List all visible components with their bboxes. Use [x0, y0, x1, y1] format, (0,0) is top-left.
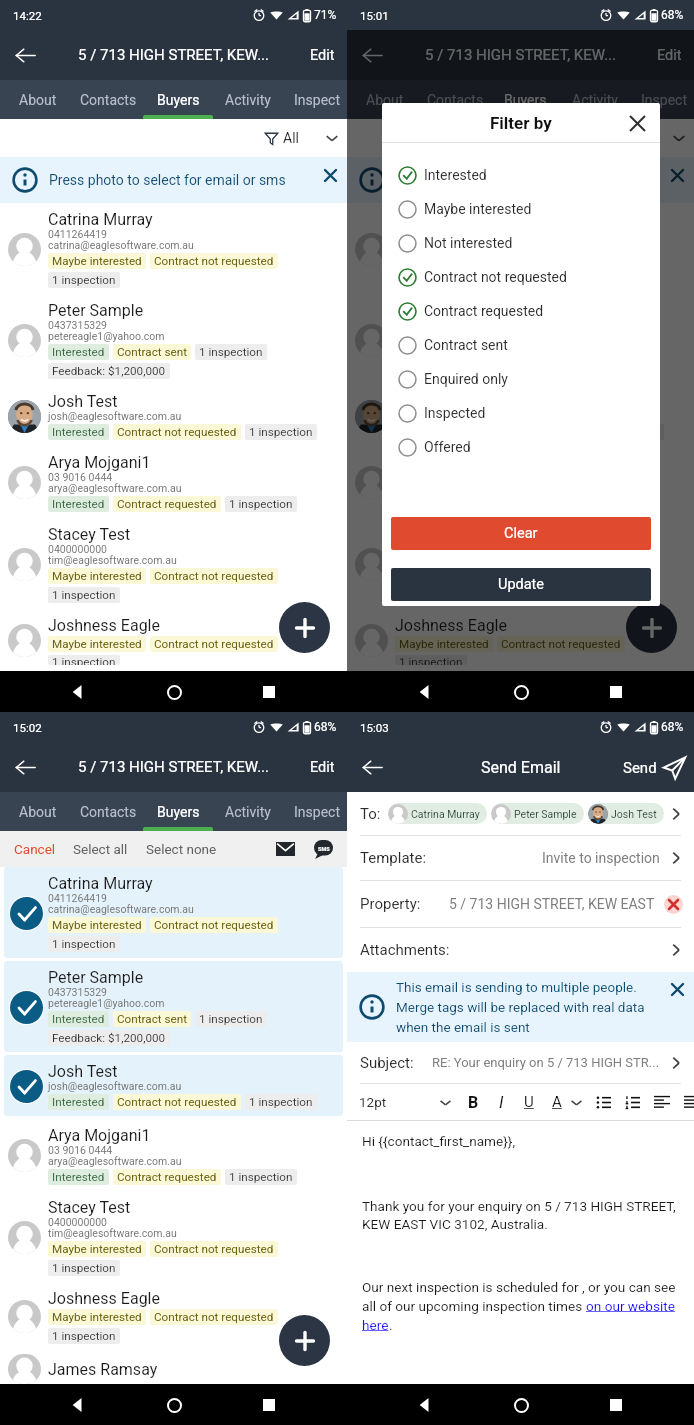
- button[interactable]: Inspect: [630, 80, 694, 119]
- button[interactable]: About: [350, 80, 420, 119]
- button[interactable]: To:: [347, 792, 694, 835]
- button[interactable]: Back: [8, 38, 42, 72]
- button[interactable]: Contacts: [73, 80, 143, 119]
- button[interactable]: Add: [626, 602, 677, 653]
- button[interactable]: Home: [503, 1387, 539, 1423]
- button[interactable]: Home: [156, 1387, 192, 1423]
- button[interactable]: Catrina Murray: [347, 203, 694, 294]
- button[interactable]: Close: [661, 972, 694, 1042]
- button[interactable]: Joshness Eagle: [0, 609, 347, 671]
- staticText: Interested: [52, 497, 105, 511]
- button[interactable]: Back: [60, 674, 96, 710]
- staticText: All: [630, 130, 646, 146]
- button[interactable]: Home: [503, 674, 539, 710]
- button[interactable]: Inspected: [382, 396, 660, 430]
- button[interactable]: Stacey Test: [347, 518, 694, 609]
- button[interactable]: Close: [314, 157, 347, 203]
- button[interactable]: Activity: [213, 792, 283, 831]
- button[interactable]: Close: [622, 108, 652, 138]
- button[interactable]: Peter Sample: [4, 961, 343, 1052]
- button[interactable]: Update: [391, 568, 651, 601]
- button[interactable]: Arya Mojgani1: [0, 1119, 347, 1191]
- button[interactable]: Recents: [251, 1387, 287, 1423]
- button[interactable]: Home: [156, 674, 192, 710]
- button[interactable]: Close: [661, 157, 694, 203]
- button[interactable]: Recents: [598, 1387, 634, 1423]
- button[interactable]: Inspect: [283, 80, 347, 119]
- button[interactable]: Property:: [347, 881, 694, 927]
- staticText: 0400000000: [395, 543, 455, 554]
- button[interactable]: Activity: [560, 80, 630, 119]
- button[interactable]: Edit: [310, 759, 335, 776]
- staticText: 1 inspection: [52, 1261, 116, 1275]
- staticText: Joshness Eagle: [48, 616, 160, 634]
- button[interactable]: About: [3, 80, 73, 119]
- button[interactable]: Inspect: [283, 792, 347, 831]
- button[interactable]: Arya Mojgani1: [0, 446, 347, 518]
- button[interactable]: Contract requested: [382, 294, 660, 328]
- button[interactable]: SMS: [308, 834, 338, 864]
- button[interactable]: Recents: [598, 674, 634, 710]
- button[interactable]: Catrina Murray: [4, 867, 343, 958]
- button[interactable]: Arya Mojgani1: [347, 446, 694, 518]
- button[interactable]: Maybe interested: [382, 192, 660, 226]
- button[interactable]: Clear: [391, 517, 651, 550]
- button[interactable]: Josh Test: [4, 1055, 343, 1116]
- button[interactable]: Contacts: [420, 80, 490, 119]
- button[interactable]: Contract not requested: [382, 260, 660, 294]
- button[interactable]: Interested: [382, 158, 660, 192]
- button[interactable]: Joshness Eagle: [347, 609, 694, 671]
- button[interactable]: Back: [407, 1387, 443, 1423]
- button[interactable]: Recents: [251, 674, 287, 710]
- button[interactable]: Send: [623, 756, 686, 779]
- button[interactable]: Not interested: [382, 226, 660, 260]
- staticText: Maybe interested: [52, 569, 142, 583]
- button[interactable]: Select all: [73, 841, 128, 857]
- button[interactable]: Select none: [146, 841, 217, 857]
- button[interactable]: Contract sent: [382, 328, 660, 362]
- button[interactable]: Back: [355, 750, 389, 784]
- button[interactable]: Buyers: [143, 792, 213, 831]
- button[interactable]: All: [264, 130, 339, 146]
- button[interactable]: Josh Test: [0, 385, 347, 446]
- button[interactable]: Peter Sample: [347, 294, 694, 385]
- staticText: Maybe interested: [52, 1310, 142, 1324]
- staticText: 03 9016 0444: [48, 471, 113, 482]
- button[interactable]: Subject:: [347, 1042, 694, 1083]
- button[interactable]: Add: [279, 1315, 330, 1366]
- staticText: Press photo to select for email or sms: [396, 172, 661, 188]
- staticText: Contract not requested: [501, 569, 621, 583]
- button[interactable]: Back: [60, 1387, 96, 1423]
- staticText: 1 inspection: [52, 273, 116, 287]
- button[interactable]: Activity: [213, 80, 283, 119]
- button[interactable]: Cancel: [14, 841, 56, 857]
- staticText: Activity: [572, 92, 618, 108]
- button[interactable]: Buyers: [490, 80, 560, 119]
- button[interactable]: Stacey Test: [0, 1191, 347, 1282]
- button[interactable]: Stacey Test: [0, 518, 347, 609]
- button[interactable]: Attachments:: [347, 928, 694, 972]
- button[interactable]: Back: [355, 38, 389, 72]
- button[interactable]: Catrina Murray: [0, 203, 347, 294]
- button[interactable]: All: [611, 130, 686, 146]
- button[interactable]: Offered: [382, 430, 660, 464]
- button[interactable]: Josh Test: [347, 385, 694, 446]
- button[interactable]: About: [3, 792, 73, 831]
- staticText: 1 inspection: [52, 655, 116, 665]
- staticText: 03 9016 0444: [48, 1144, 113, 1155]
- button[interactable]: Contacts: [73, 792, 143, 831]
- button[interactable]: Edit: [310, 47, 335, 64]
- button[interactable]: Enquired only: [382, 362, 660, 396]
- button[interactable]: Template:: [347, 836, 694, 880]
- staticText: Contract not requested: [501, 637, 621, 651]
- button[interactable]: Email: [270, 834, 300, 864]
- button[interactable]: Add: [279, 602, 330, 653]
- button[interactable]: Joshness Eagle: [0, 1282, 347, 1350]
- button[interactable]: Edit: [657, 47, 682, 64]
- button[interactable]: Peter Sample: [0, 294, 347, 385]
- button[interactable]: Back: [8, 750, 42, 784]
- button[interactable]: Buyers: [143, 80, 213, 119]
- button[interactable]: Back: [407, 674, 443, 710]
